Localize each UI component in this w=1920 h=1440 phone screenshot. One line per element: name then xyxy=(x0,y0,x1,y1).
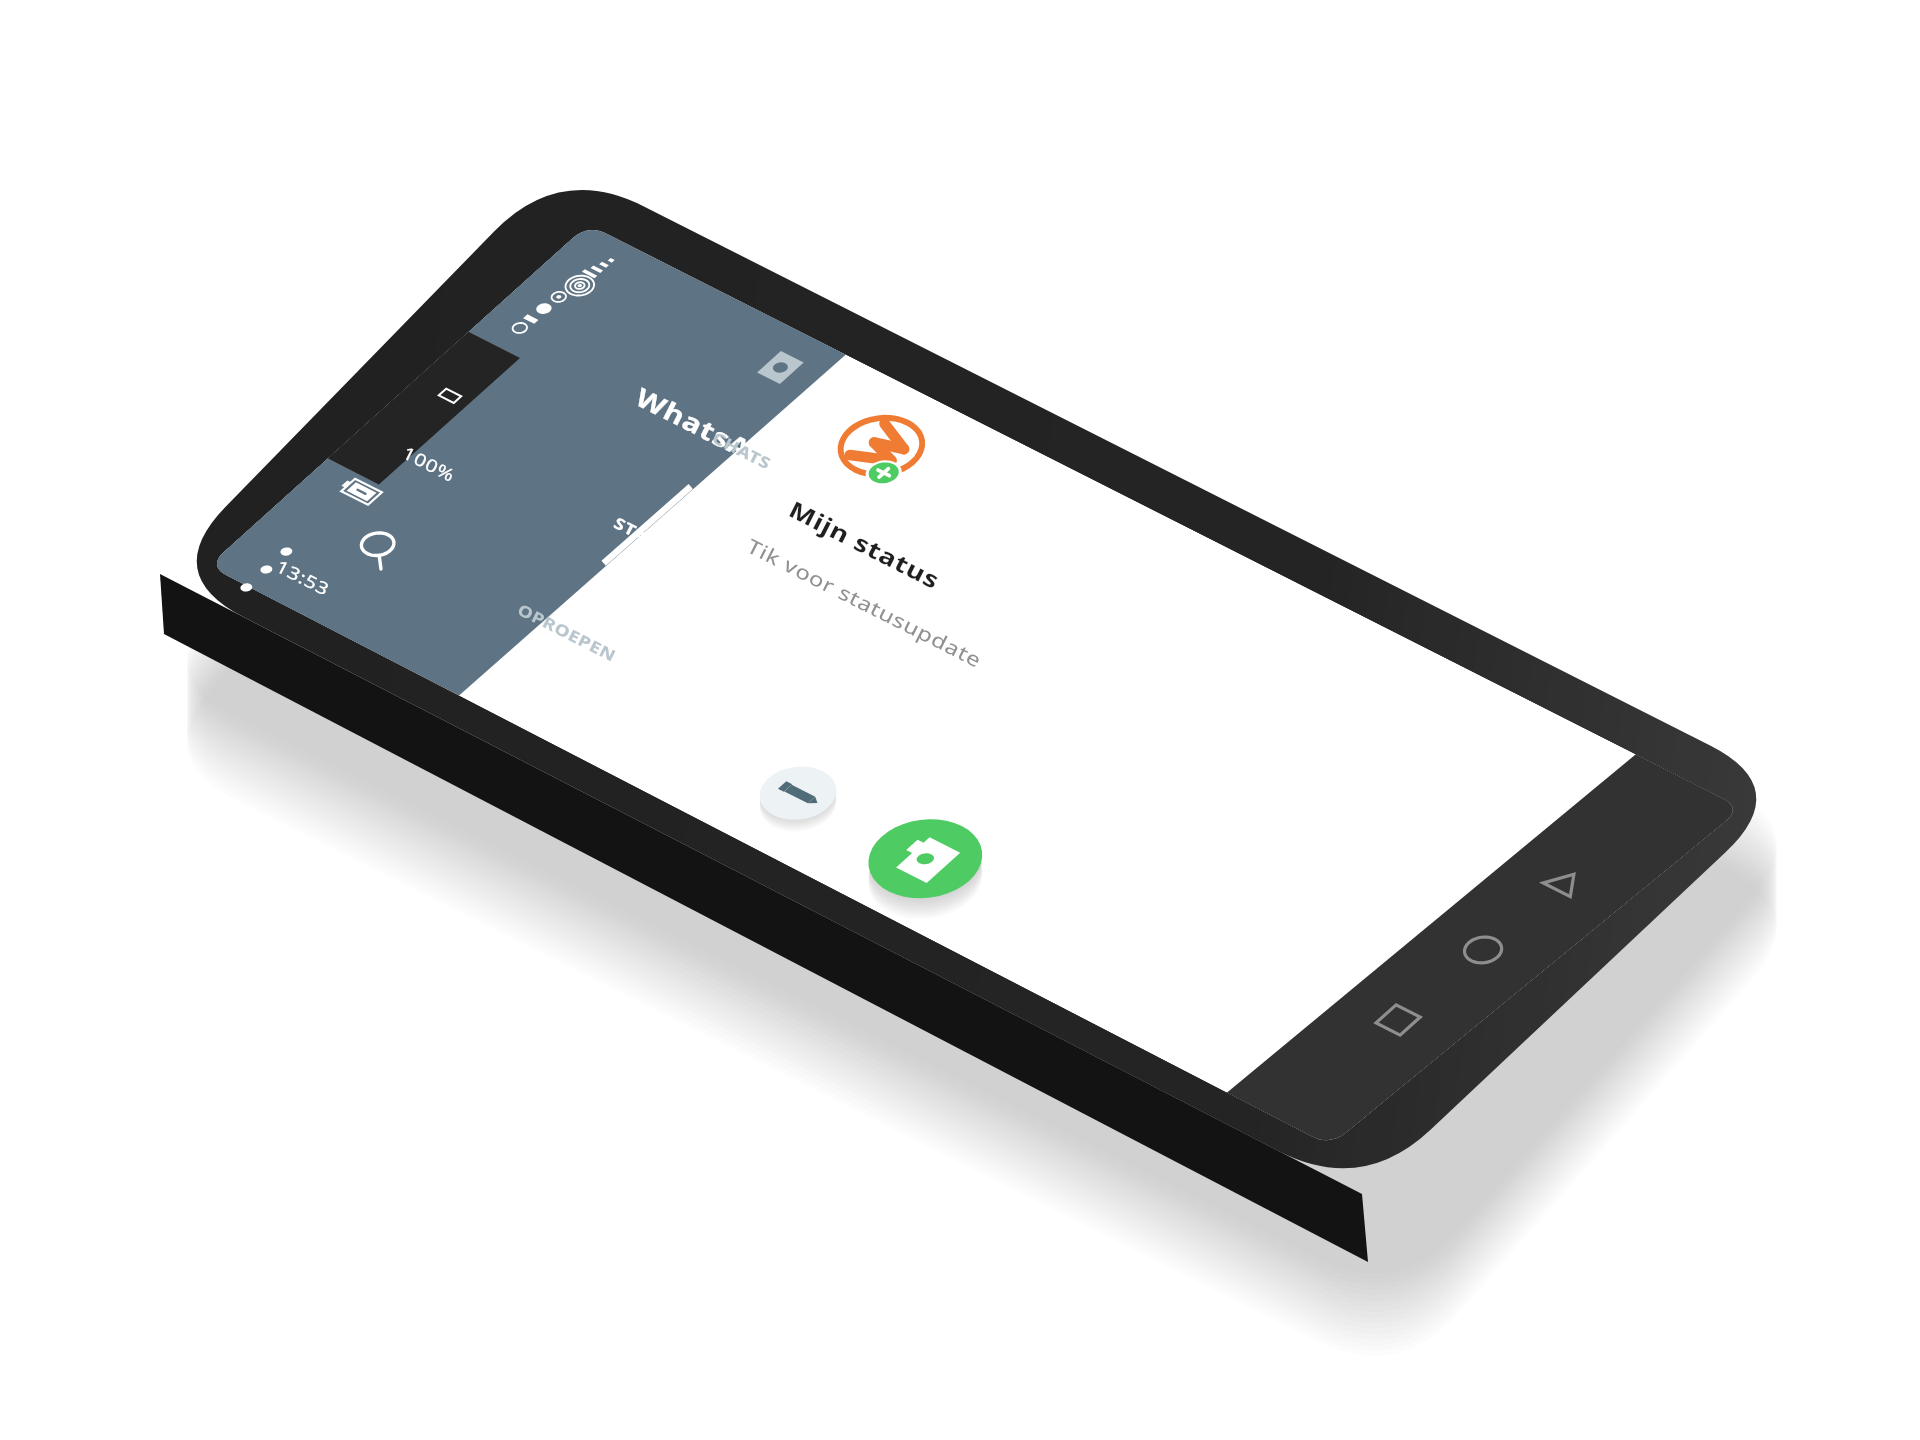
staticText: Tik voor statusupdate xyxy=(743,532,987,673)
staticText: 100% xyxy=(398,441,460,488)
button[interactable]: Mijn status xyxy=(784,493,946,596)
button[interactable]: CHATS xyxy=(709,427,775,474)
staticText: WhatsApp Business xyxy=(630,379,929,553)
button[interactable]: OPROEPEN xyxy=(514,599,620,667)
button[interactable]: STATUS xyxy=(610,512,684,564)
staticText: 13:53 xyxy=(272,554,333,601)
